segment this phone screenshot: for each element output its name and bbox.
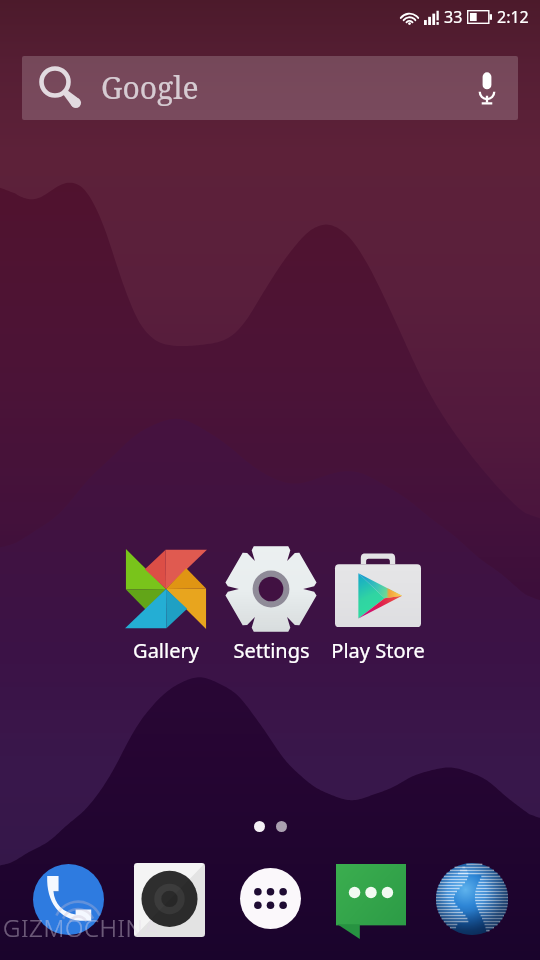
- staticText: Settings: [233, 637, 310, 664]
- button[interactable]: Camera: [124, 855, 214, 945]
- button[interactable]: Phone: [23, 854, 113, 944]
- staticText: GIZMOCHINA: [3, 911, 159, 944]
- staticText: Play Store: [331, 637, 425, 664]
- button[interactable]: Messages: [326, 856, 416, 946]
- staticText: 33: [444, 6, 463, 28]
- button[interactable]: Google: [22, 56, 518, 120]
- button[interactable]: Browser: [427, 854, 517, 944]
- button[interactable]: All apps: [225, 853, 315, 943]
- staticText: 2:12: [497, 6, 529, 28]
- staticText: Gallery: [133, 637, 199, 664]
- staticText: Google: [101, 67, 199, 108]
- button[interactable]: Gallery: [112, 541, 220, 664]
- button[interactable]: Play Store: [324, 541, 432, 664]
- button[interactable]: Settings: [217, 541, 325, 664]
